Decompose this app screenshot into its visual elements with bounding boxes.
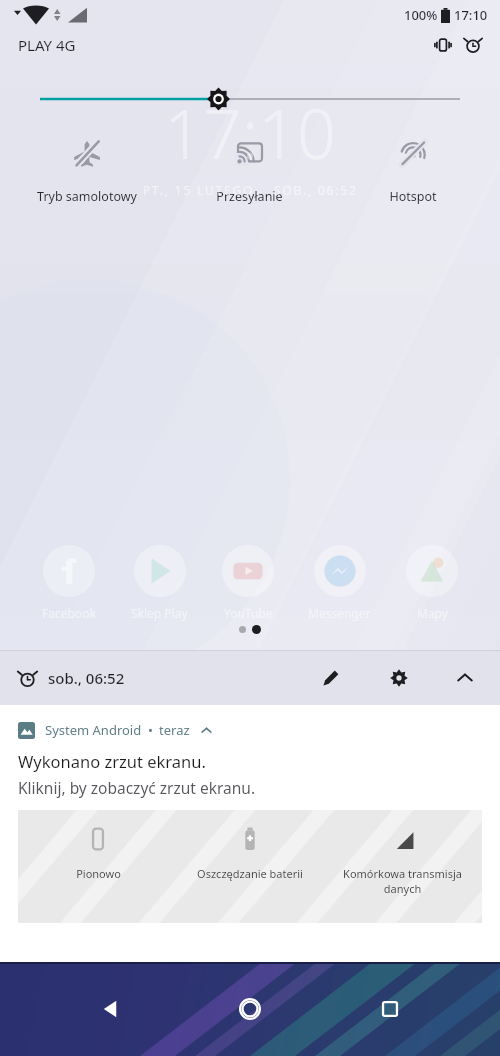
button[interactable]: Mapy [406,545,458,621]
button[interactable]: Sklep Play [131,545,188,621]
button[interactable]: YouTube [222,545,274,621]
button[interactable]: Recent apps [361,980,419,1038]
button[interactable]: Facebook [42,545,96,621]
staticText: Przesyłanie [216,188,283,205]
button[interactable]: Settings [382,661,416,695]
staticText: Mapy [417,605,448,621]
staticText: PT., 15 LUTEGO SOB., 06:52 [143,182,358,198]
staticText: Kliknij, by zobaczyć zrzut ekranu. [18,777,256,798]
button[interactable]: Messenger [308,545,371,621]
staticText: Oszczędzanie baterii [197,866,303,881]
button[interactable]: Screenshot preview [18,810,482,923]
staticText: Hotspot [389,188,437,205]
staticText: PLAY 4G [18,35,76,55]
staticText: Tryb samolotowy [37,188,137,205]
staticText: • [148,721,153,739]
button[interactable]: Brightness [0,82,500,116]
staticText: YouTube [224,605,273,621]
button[interactable]: Home [221,980,279,1038]
staticText: Messenger [308,605,371,621]
staticText: Wykonano zrzut ekranu. [18,750,206,772]
staticText: sob., 06:52 [48,668,125,688]
button[interactable]: Hotspot [331,134,494,209]
button[interactable]: Back [82,980,140,1038]
button[interactable]: Tryb samolotowy [6,134,168,209]
staticText: 100% [404,6,438,24]
button[interactable]: sob., 06:52 [18,668,125,688]
staticText: 17:10 [454,6,488,24]
staticText: teraz [159,721,190,739]
button[interactable]: Edit [314,661,348,695]
staticText: 17:10 [164,86,336,179]
staticText: Facebook [42,605,96,621]
button[interactable]: System Android [0,705,500,923]
button[interactable]: Collapse [448,661,482,695]
staticText: System Android [45,721,142,739]
staticText: Komórkowa transmisja danych [343,866,462,896]
staticText: Pionowo [76,866,121,881]
button[interactable]: Collapse notification [197,721,215,739]
staticText: Sklep Play [131,605,188,621]
button[interactable]: Przesyłanie [168,134,331,209]
